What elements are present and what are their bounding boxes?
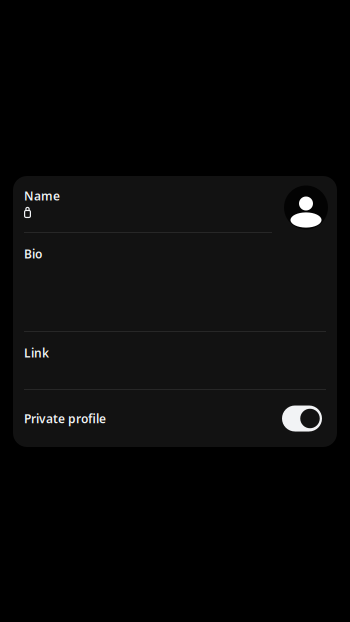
button[interactable]: Private profile — [282, 405, 322, 431]
button[interactable]: Name — [13, 176, 337, 233]
button[interactable]: Private profile — [13, 390, 337, 447]
staticText: Private profile — [24, 410, 106, 426]
button[interactable]: Change profile picture — [284, 185, 328, 229]
button[interactable]: Bio — [13, 233, 337, 332]
staticText: Link — [24, 345, 49, 361]
button[interactable]: Link — [13, 332, 337, 390]
staticText: Name — [24, 188, 60, 204]
staticText: Bio — [24, 246, 42, 262]
